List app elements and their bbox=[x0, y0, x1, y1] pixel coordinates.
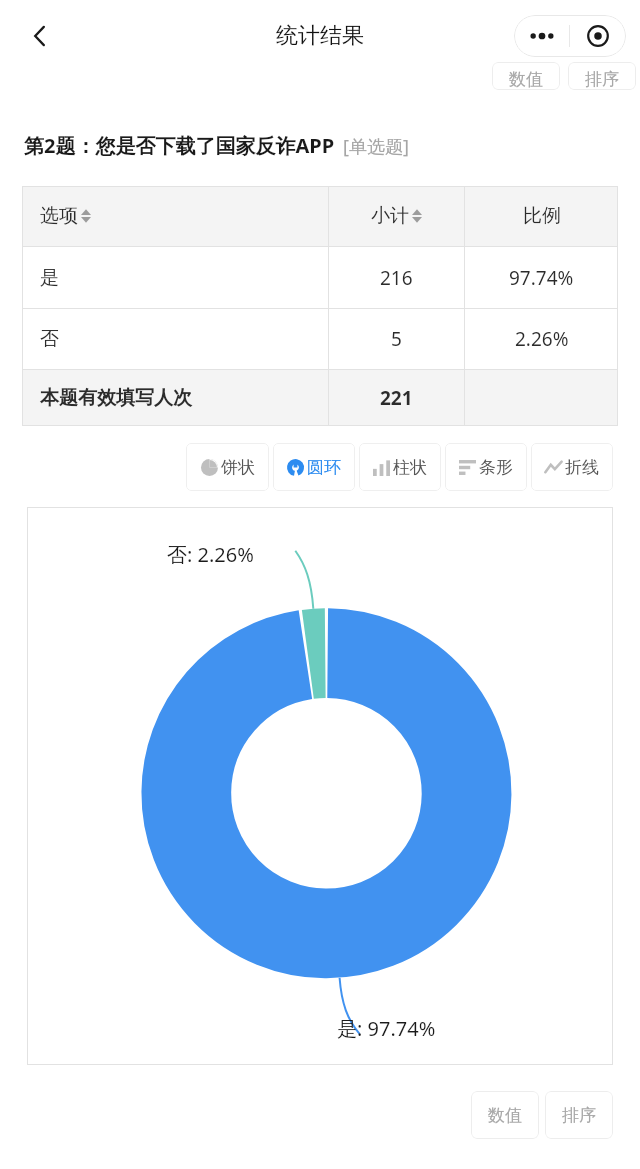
staticText: 2.26% bbox=[515, 326, 569, 352]
staticText: 否: 2.26% bbox=[167, 541, 254, 568]
staticText: 本题有效填写人次 bbox=[40, 386, 192, 410]
staticText: 统计结果 bbox=[276, 22, 364, 50]
staticText: 221 bbox=[380, 385, 413, 411]
button[interactable]: 排序 bbox=[568, 62, 636, 90]
button[interactable]: 数值 bbox=[492, 62, 560, 90]
staticText: 97.74% bbox=[509, 265, 574, 291]
staticText: 否 bbox=[40, 327, 59, 351]
staticText: [单选题] bbox=[343, 134, 409, 159]
staticText: 排序 bbox=[562, 1105, 596, 1126]
button[interactable]: 折线 bbox=[531, 443, 613, 491]
staticText: 小计 bbox=[371, 204, 409, 228]
button[interactable]: 小计 bbox=[329, 186, 464, 246]
staticText: 数值 bbox=[509, 69, 543, 90]
staticText: 216 bbox=[380, 265, 413, 291]
button[interactable]: More bbox=[514, 15, 569, 57]
button[interactable]: 数值 bbox=[471, 1091, 539, 1139]
staticText: 排序 bbox=[585, 69, 619, 90]
button[interactable]: 选项 bbox=[22, 186, 328, 246]
button[interactable]: 排序 bbox=[545, 1091, 613, 1139]
staticText: 5 bbox=[391, 326, 402, 352]
staticText: 第2题：您是否下载了国家反诈APP bbox=[24, 132, 335, 159]
staticText: 柱状 bbox=[393, 457, 427, 478]
button[interactable]: 条形 bbox=[445, 443, 527, 491]
staticText: 条形 bbox=[479, 457, 513, 478]
button[interactable]: Back bbox=[18, 14, 62, 58]
button[interactable]: 柱状 bbox=[359, 443, 441, 491]
button[interactable]: 饼状 bbox=[186, 443, 269, 491]
staticText: 是 bbox=[40, 266, 59, 290]
staticText: 饼状 bbox=[221, 457, 255, 478]
button[interactable]: 圆环 bbox=[273, 443, 355, 491]
staticText: 是: 97.74% bbox=[337, 1015, 436, 1042]
staticText: 折线 bbox=[565, 457, 599, 478]
staticText: 圆环 bbox=[307, 457, 341, 478]
staticText: 选项 bbox=[40, 204, 78, 228]
staticText: 数值 bbox=[488, 1105, 522, 1126]
button[interactable]: Close bbox=[570, 15, 626, 57]
staticText: 比例 bbox=[523, 204, 561, 228]
